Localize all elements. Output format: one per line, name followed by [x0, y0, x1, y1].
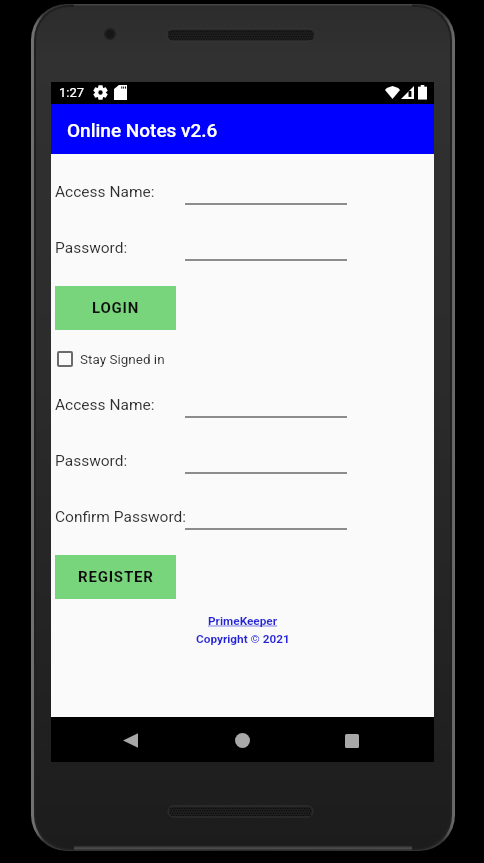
- button[interactable]: Home: [212, 718, 272, 763]
- staticText: Password:: [55, 452, 128, 470]
- button[interactable]: REGISTER: [55, 555, 176, 599]
- staticText: Stay Signed in: [80, 351, 165, 367]
- staticText: Access Name:: [55, 183, 155, 201]
- button[interactable]: Stay Signed in: [57, 350, 165, 368]
- staticText: 1:27: [59, 85, 85, 100]
- staticText: REGISTER: [78, 568, 154, 586]
- button[interactable]: LOGIN: [55, 286, 176, 330]
- staticText: Password:: [55, 239, 128, 257]
- staticText: Copyright © 2021: [196, 632, 290, 646]
- button[interactable]: Recent apps: [322, 718, 382, 763]
- button[interactable]: PrimeKeeper: [208, 614, 278, 628]
- staticText: Access Name:: [55, 396, 155, 414]
- staticText: Confirm Password:: [55, 508, 186, 526]
- staticText: Online Notes v2.6: [67, 119, 218, 141]
- staticText: LOGIN: [92, 299, 140, 317]
- button[interactable]: Back: [100, 718, 160, 763]
